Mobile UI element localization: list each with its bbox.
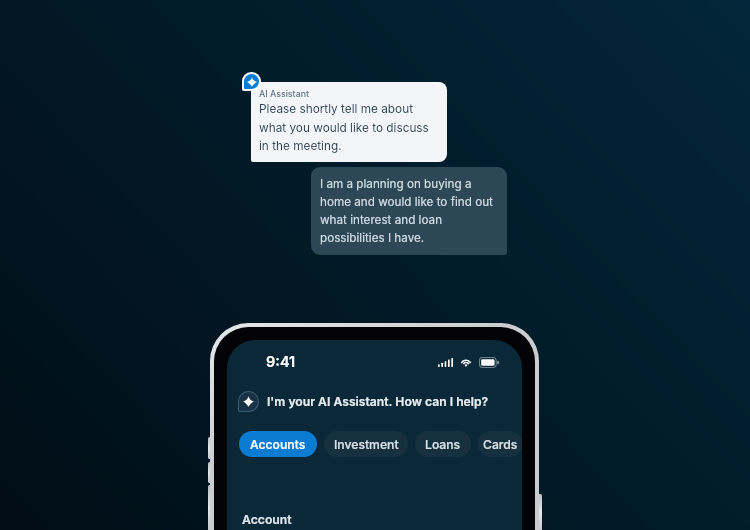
staticText: Please shortly tell me about what you wo… [259,102,429,152]
button[interactable]: I'm your AI Assistant. How can I help? [238,391,489,412]
staticText: I'm your AI Assistant. How can I help? [267,394,489,409]
staticText: Loans [425,437,461,452]
staticText: Investment [334,437,399,452]
staticText: Account [242,512,292,527]
staticText: AI Assistant [259,88,309,99]
staticText: I am a planning on buying a home and wou… [320,177,493,245]
button[interactable]: Investment [324,431,408,457]
button[interactable]: Accounts [239,431,317,457]
button[interactable]: Loans [415,431,471,457]
button[interactable]: Cards [478,431,522,457]
staticText: 9:41 [266,353,296,371]
staticText: Accounts [250,437,306,452]
staticText: Cards [483,437,518,452]
